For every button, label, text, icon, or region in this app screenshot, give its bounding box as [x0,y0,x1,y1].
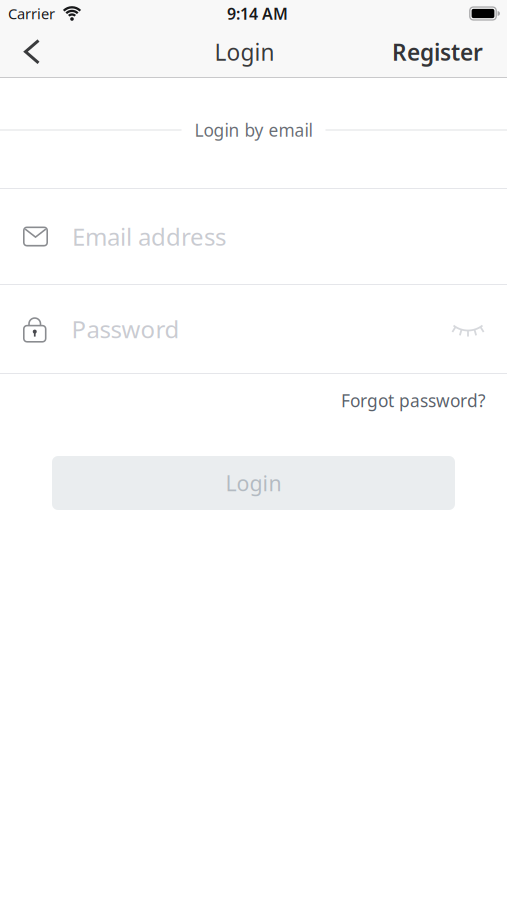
button[interactable]: Show password [443,302,507,356]
button[interactable]: Register [380,27,507,77]
button[interactable]: Login [52,456,455,510]
staticText: 9:14 AM [227,3,288,24]
staticText: Register [392,37,483,67]
button[interactable]: Password [0,313,443,345]
button[interactable]: Forgot password? [341,374,507,412]
staticText: Email address [72,221,226,252]
staticText: Login by email [194,118,312,141]
staticText: Login [214,37,274,67]
staticText: Password [71,313,179,345]
staticText: Carrier [8,4,55,23]
button[interactable]: Email address [0,189,507,284]
staticText: Forgot password? [341,389,486,412]
staticText: Login [225,469,281,497]
button[interactable]: Back [0,27,55,77]
